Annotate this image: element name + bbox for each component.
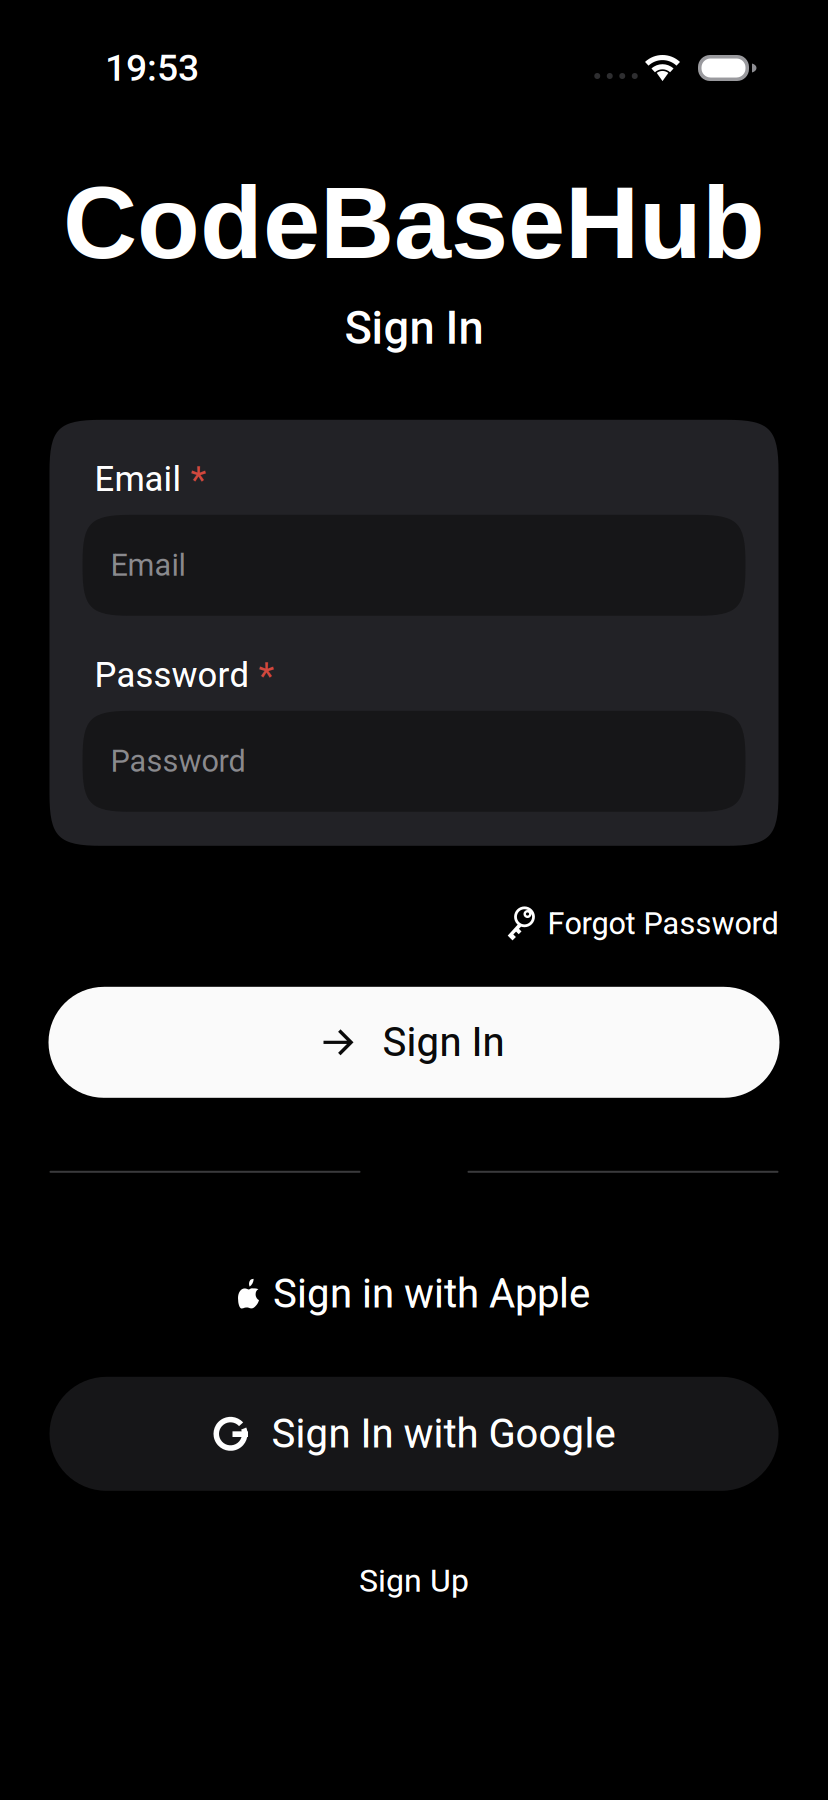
staticText: Sign In	[344, 302, 483, 355]
staticText: Sign in with Apple	[273, 1270, 590, 1317]
staticText: Password	[110, 743, 245, 779]
staticText: Sign In	[382, 1019, 504, 1066]
button[interactable]: Sign In with Google	[49, 1377, 778, 1491]
button[interactable]: Forgot Password	[49, 896, 778, 952]
staticText: 19:53	[105, 46, 199, 90]
staticText: Password	[94, 655, 249, 695]
staticText: *	[249, 655, 274, 697]
button[interactable]: Sign in with Apple	[49, 1263, 778, 1325]
staticText: CodeBaseHub	[63, 165, 765, 280]
button[interactable]: Sign In	[48, 987, 779, 1098]
staticText: Sign In with Google	[271, 1410, 615, 1457]
button[interactable]: Sign Up	[264, 1556, 564, 1606]
staticText: *	[181, 459, 206, 501]
staticText: Email	[110, 547, 185, 583]
staticText: Sign Up	[359, 1562, 469, 1600]
staticText: Email	[94, 459, 181, 499]
staticText: Forgot Password	[547, 906, 778, 942]
